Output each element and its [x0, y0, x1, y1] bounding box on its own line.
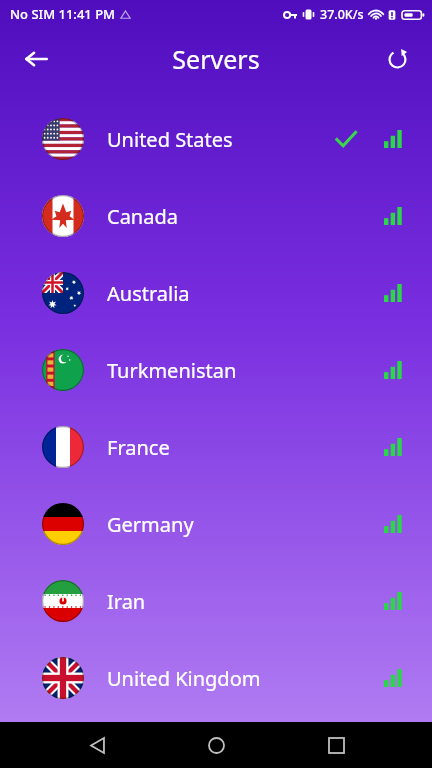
button[interactable]: Refresh [376, 38, 418, 80]
button[interactable]: Back [74, 722, 120, 768]
button[interactable]: Home [193, 722, 239, 768]
button[interactable]: Turkmenistan [0, 331, 432, 408]
button[interactable]: Germany [0, 485, 432, 562]
button[interactable]: Australia [0, 254, 432, 331]
staticText: Turkmenistan [107, 357, 237, 384]
staticText: Iran [107, 588, 146, 615]
button[interactable]: Canada [0, 177, 432, 254]
button[interactable]: Iran [0, 562, 432, 639]
button[interactable]: United Kingdom [0, 639, 432, 716]
staticText: Germany [107, 511, 194, 538]
staticText: United States [107, 126, 233, 153]
button[interactable]: France [0, 408, 432, 485]
staticText: Australia [107, 280, 190, 307]
button[interactable]: United States [0, 100, 432, 177]
staticText: No SIM 11:41 PM [10, 5, 116, 23]
staticText: Servers [172, 42, 260, 76]
button[interactable]: Back [14, 37, 58, 81]
staticText: 37.0K/s [320, 6, 364, 23]
staticText: Canada [107, 203, 178, 230]
staticText: United Kingdom [107, 665, 261, 692]
button[interactable]: Recent apps [313, 722, 359, 768]
staticText: France [107, 434, 170, 461]
